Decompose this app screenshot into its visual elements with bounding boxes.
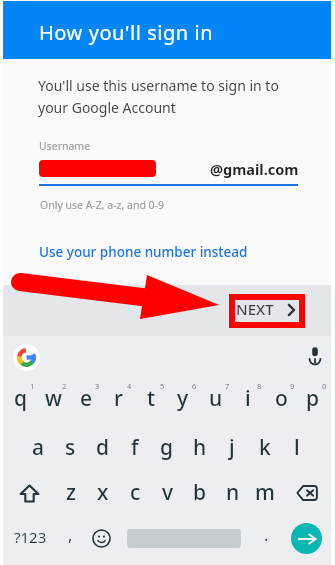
button[interactable]: g — [151, 425, 183, 469]
button[interactable]: h — [184, 425, 216, 469]
button[interactable]: , — [57, 513, 83, 557]
staticText: o — [275, 384, 288, 413]
button[interactable]: s — [54, 425, 86, 469]
button[interactable]: . — [253, 513, 279, 557]
staticText: . — [264, 524, 269, 546]
staticText: 7 — [225, 381, 230, 391]
other: Emoji — [92, 529, 111, 548]
staticText: p — [306, 384, 320, 413]
button[interactable]: r — [102, 376, 134, 420]
staticText: a — [32, 433, 45, 462]
staticText: y — [177, 384, 189, 413]
staticText: d — [96, 433, 110, 462]
button[interactable]: i — [232, 376, 264, 420]
button[interactable]: t — [135, 376, 167, 420]
button[interactable]: f — [119, 425, 151, 469]
staticText: 4 — [127, 381, 132, 391]
staticText: n — [226, 478, 240, 507]
staticText: , — [68, 524, 73, 546]
button[interactable]: d — [87, 425, 119, 469]
button[interactable]: b — [184, 470, 216, 514]
button[interactable]: ?123 — [5, 515, 55, 559]
staticText: z — [66, 478, 77, 507]
staticText: NEXT — [236, 299, 274, 319]
staticText: m — [255, 478, 275, 507]
staticText: Username — [39, 139, 91, 153]
staticText: 2 — [62, 381, 67, 391]
button[interactable]: o — [265, 376, 297, 420]
staticText: l — [294, 433, 300, 462]
other: Backspace — [296, 485, 318, 501]
staticText: f — [131, 433, 139, 462]
staticText: h — [193, 433, 207, 462]
staticText: How you'll sign in — [39, 19, 214, 46]
staticText: v — [162, 478, 174, 507]
staticText: 5 — [160, 381, 165, 391]
staticText: k — [259, 433, 271, 462]
staticText: j — [229, 433, 235, 462]
button[interactable]: z — [55, 470, 87, 514]
staticText: 8 — [257, 381, 262, 391]
button[interactable]: Voice input — [303, 343, 327, 367]
staticText: 3 — [95, 381, 100, 391]
staticText: Use your phone number instead — [39, 243, 248, 261]
button[interactable]: Backspace — [289, 471, 325, 515]
button[interactable]: a — [22, 425, 54, 469]
button[interactable]: w — [37, 376, 69, 420]
staticText: 0 — [322, 381, 327, 391]
staticText: 9 — [290, 381, 295, 391]
button[interactable]: c — [119, 470, 151, 514]
staticText: @gmail.com — [210, 159, 299, 179]
staticText: You'll use this username to sign in to y… — [38, 76, 279, 117]
button[interactable]: j — [216, 425, 248, 469]
button[interactable]: q — [5, 376, 37, 420]
button[interactable]: Use your phone number instead — [39, 243, 248, 261]
staticText: r — [114, 384, 123, 413]
button[interactable]: y — [167, 376, 199, 420]
staticText: Only use A-Z, a-z, and 0-9 — [40, 198, 165, 212]
staticText: ?123 — [14, 527, 47, 547]
button[interactable]: n — [217, 470, 249, 514]
button[interactable]: Enter — [291, 523, 322, 554]
button[interactable]: v — [152, 470, 184, 514]
button[interactable]: Emoji — [87, 516, 115, 560]
button[interactable]: NEXT — [236, 294, 295, 324]
staticText: 6 — [192, 381, 197, 391]
staticText: q — [14, 384, 28, 413]
staticText: s — [65, 433, 76, 462]
button[interactable]: Shift — [11, 471, 47, 515]
staticText: b — [193, 478, 207, 507]
staticText: c — [130, 478, 141, 507]
staticText: 1 — [30, 381, 35, 391]
other: Shift — [20, 484, 39, 503]
staticText: g — [160, 433, 174, 462]
button[interactable]: Google search — [13, 344, 40, 371]
button[interactable]: p — [297, 376, 329, 420]
staticText: x — [97, 478, 109, 507]
button[interactable]: u — [200, 376, 232, 420]
staticText: i — [245, 384, 251, 413]
button[interactable]: m — [249, 470, 281, 514]
button[interactable]: x — [87, 470, 119, 514]
button[interactable]: l — [281, 425, 313, 469]
staticText: e — [80, 384, 93, 413]
staticText: t — [147, 384, 156, 413]
button[interactable]: k — [249, 425, 281, 469]
staticText: w — [45, 384, 62, 413]
button[interactable]: e — [70, 376, 102, 420]
staticText: u — [209, 384, 223, 413]
